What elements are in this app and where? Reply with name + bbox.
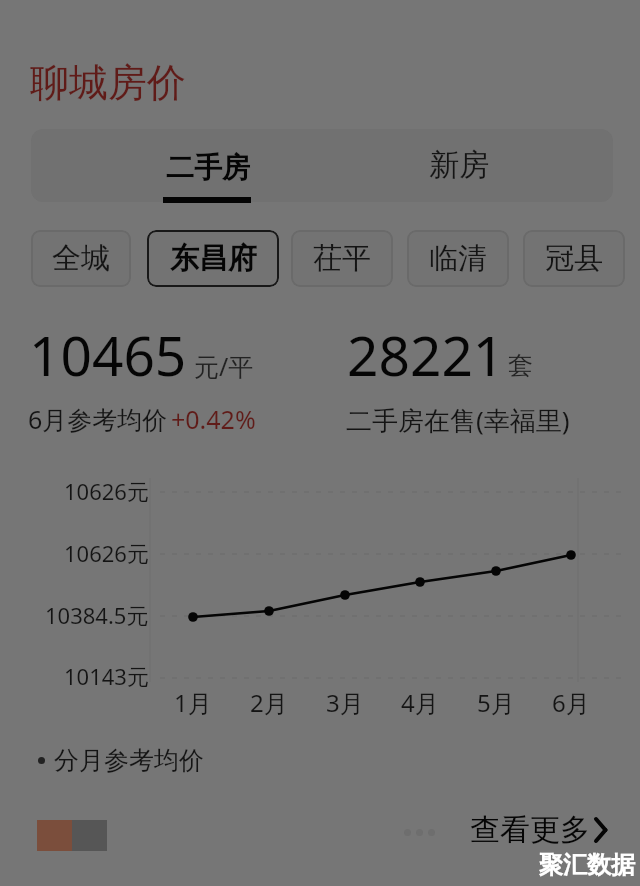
- staticText: 查看更多: [470, 811, 590, 849]
- staticText: 二手房: [166, 150, 250, 185]
- staticText: 28221: [347, 317, 505, 392]
- staticText: 分月参考均价: [54, 745, 204, 776]
- staticText: 6月: [552, 686, 590, 719]
- button[interactable]: 临清: [407, 230, 509, 287]
- staticText: +0.42%: [171, 402, 256, 436]
- button[interactable]: 二手房: [31, 129, 322, 202]
- staticText: 10143元: [64, 661, 149, 691]
- staticText: 聊城房价: [30, 58, 186, 107]
- staticText: 3月: [326, 686, 364, 719]
- staticText: 5月: [477, 686, 515, 719]
- button[interactable]: More options: [404, 829, 435, 836]
- staticText: 全城: [52, 240, 110, 277]
- staticText: 茌平: [313, 240, 371, 277]
- staticText: 新房: [429, 146, 489, 184]
- button[interactable]: 查看更多: [470, 811, 608, 849]
- staticText: 套: [508, 350, 533, 381]
- button[interactable]: 新房: [322, 129, 613, 202]
- staticText: 二手房在售(幸福里): [346, 402, 570, 438]
- button[interactable]: 东昌府: [147, 230, 279, 287]
- staticText: 10626元: [64, 538, 149, 568]
- staticText: 10626元: [64, 476, 149, 506]
- staticText: 2月: [250, 686, 288, 719]
- staticText: 4月: [401, 686, 439, 719]
- staticText: 临清: [429, 240, 487, 277]
- staticText: 6月参考均价: [28, 402, 168, 436]
- staticText: 冠县: [545, 240, 603, 277]
- button[interactable]: 茌平: [291, 230, 393, 287]
- button[interactable]: 全城: [31, 230, 131, 287]
- staticText: 东昌府: [170, 240, 257, 277]
- staticText: 聚汇数据: [539, 850, 635, 880]
- staticText: 元/平: [194, 349, 254, 383]
- button[interactable]: 冠县: [523, 230, 625, 287]
- staticText: 10465: [29, 317, 187, 392]
- staticText: 10384.5元: [45, 600, 149, 630]
- staticText: 1月: [174, 686, 212, 719]
